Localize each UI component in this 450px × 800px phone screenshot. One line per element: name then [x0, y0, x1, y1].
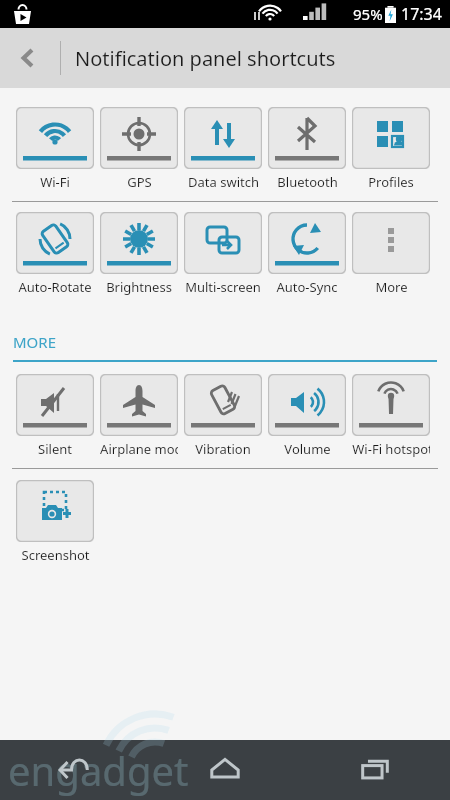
button[interactable]: Home [150, 740, 300, 800]
button[interactable]: Auto-Sync [268, 212, 346, 296]
staticText: Volume [284, 440, 331, 458]
button[interactable]: Multi-screen [184, 212, 262, 296]
staticText: Notification panel shortcuts [75, 45, 336, 72]
button[interactable]: Auto-Rotate [16, 212, 94, 296]
button[interactable]: Wi-Fi [16, 107, 94, 191]
staticText: Auto-Rotate [18, 278, 92, 296]
staticText: Data switch [188, 173, 259, 191]
staticText: Screenshot [21, 546, 90, 564]
button[interactable]: Recents [300, 740, 450, 800]
button[interactable]: Vibration [184, 374, 262, 458]
button[interactable]: Airplane mode [100, 374, 178, 458]
staticText: Auto-Sync [276, 278, 338, 296]
button[interactable]: Silent [16, 374, 94, 458]
button[interactable]: Bluetooth [268, 107, 346, 191]
button[interactable]: More [352, 212, 430, 296]
staticText: Brightness [106, 278, 172, 296]
staticText: 95% [353, 4, 383, 24]
button[interactable]: Brightness [100, 212, 178, 296]
staticText: Airplane mode [100, 440, 178, 458]
staticText: MORE [13, 332, 56, 352]
button[interactable]: Screenshot [16, 480, 94, 564]
staticText: Multi-screen [185, 278, 261, 296]
staticText: GPS [127, 173, 152, 191]
button[interactable]: Volume [268, 374, 346, 458]
staticText: Wi-Fi [40, 173, 70, 191]
staticText: 17:34 [401, 3, 442, 25]
button[interactable]: Data switch [184, 107, 262, 191]
button[interactable]: Profiles [352, 107, 430, 191]
staticText: Vibration [195, 440, 251, 458]
staticText: Wi-Fi hotspot [352, 440, 430, 458]
button[interactable]: Back [0, 30, 56, 86]
staticText: More [375, 278, 408, 296]
staticText: Silent [38, 440, 72, 458]
staticText: engadget [8, 743, 189, 797]
staticText: Profiles [368, 173, 414, 191]
button[interactable]: Wi-Fi hotspot [352, 374, 430, 458]
button[interactable]: Back [0, 740, 150, 800]
staticText: Bluetooth [277, 173, 338, 191]
button[interactable]: GPS [100, 107, 178, 191]
